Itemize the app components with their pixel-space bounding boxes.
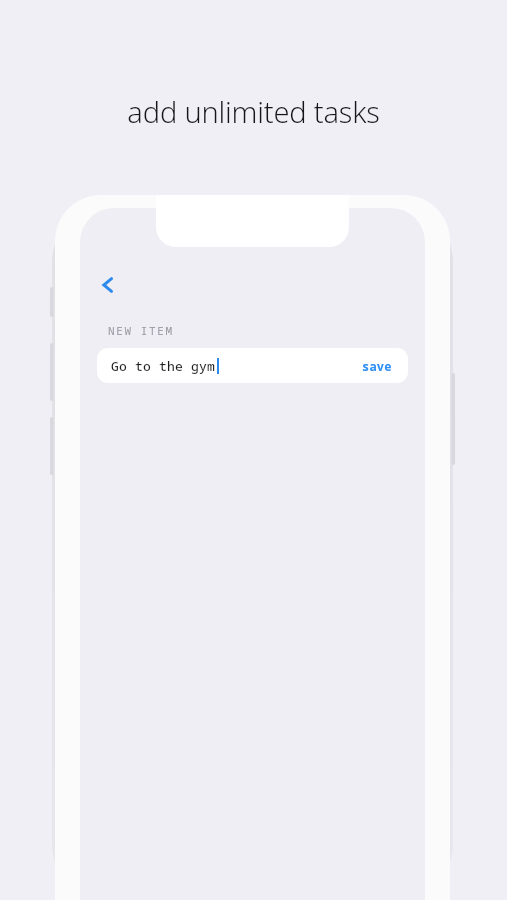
staticText: NEW ITEM <box>108 323 174 338</box>
staticText: save <box>362 358 392 374</box>
button[interactable]: save <box>360 354 394 378</box>
button[interactable]: Back <box>86 263 130 307</box>
staticText: add unlimited tasks <box>0 92 507 131</box>
button[interactable]: Go to the gym <box>97 348 408 383</box>
staticText: Go to the gym <box>111 357 216 375</box>
